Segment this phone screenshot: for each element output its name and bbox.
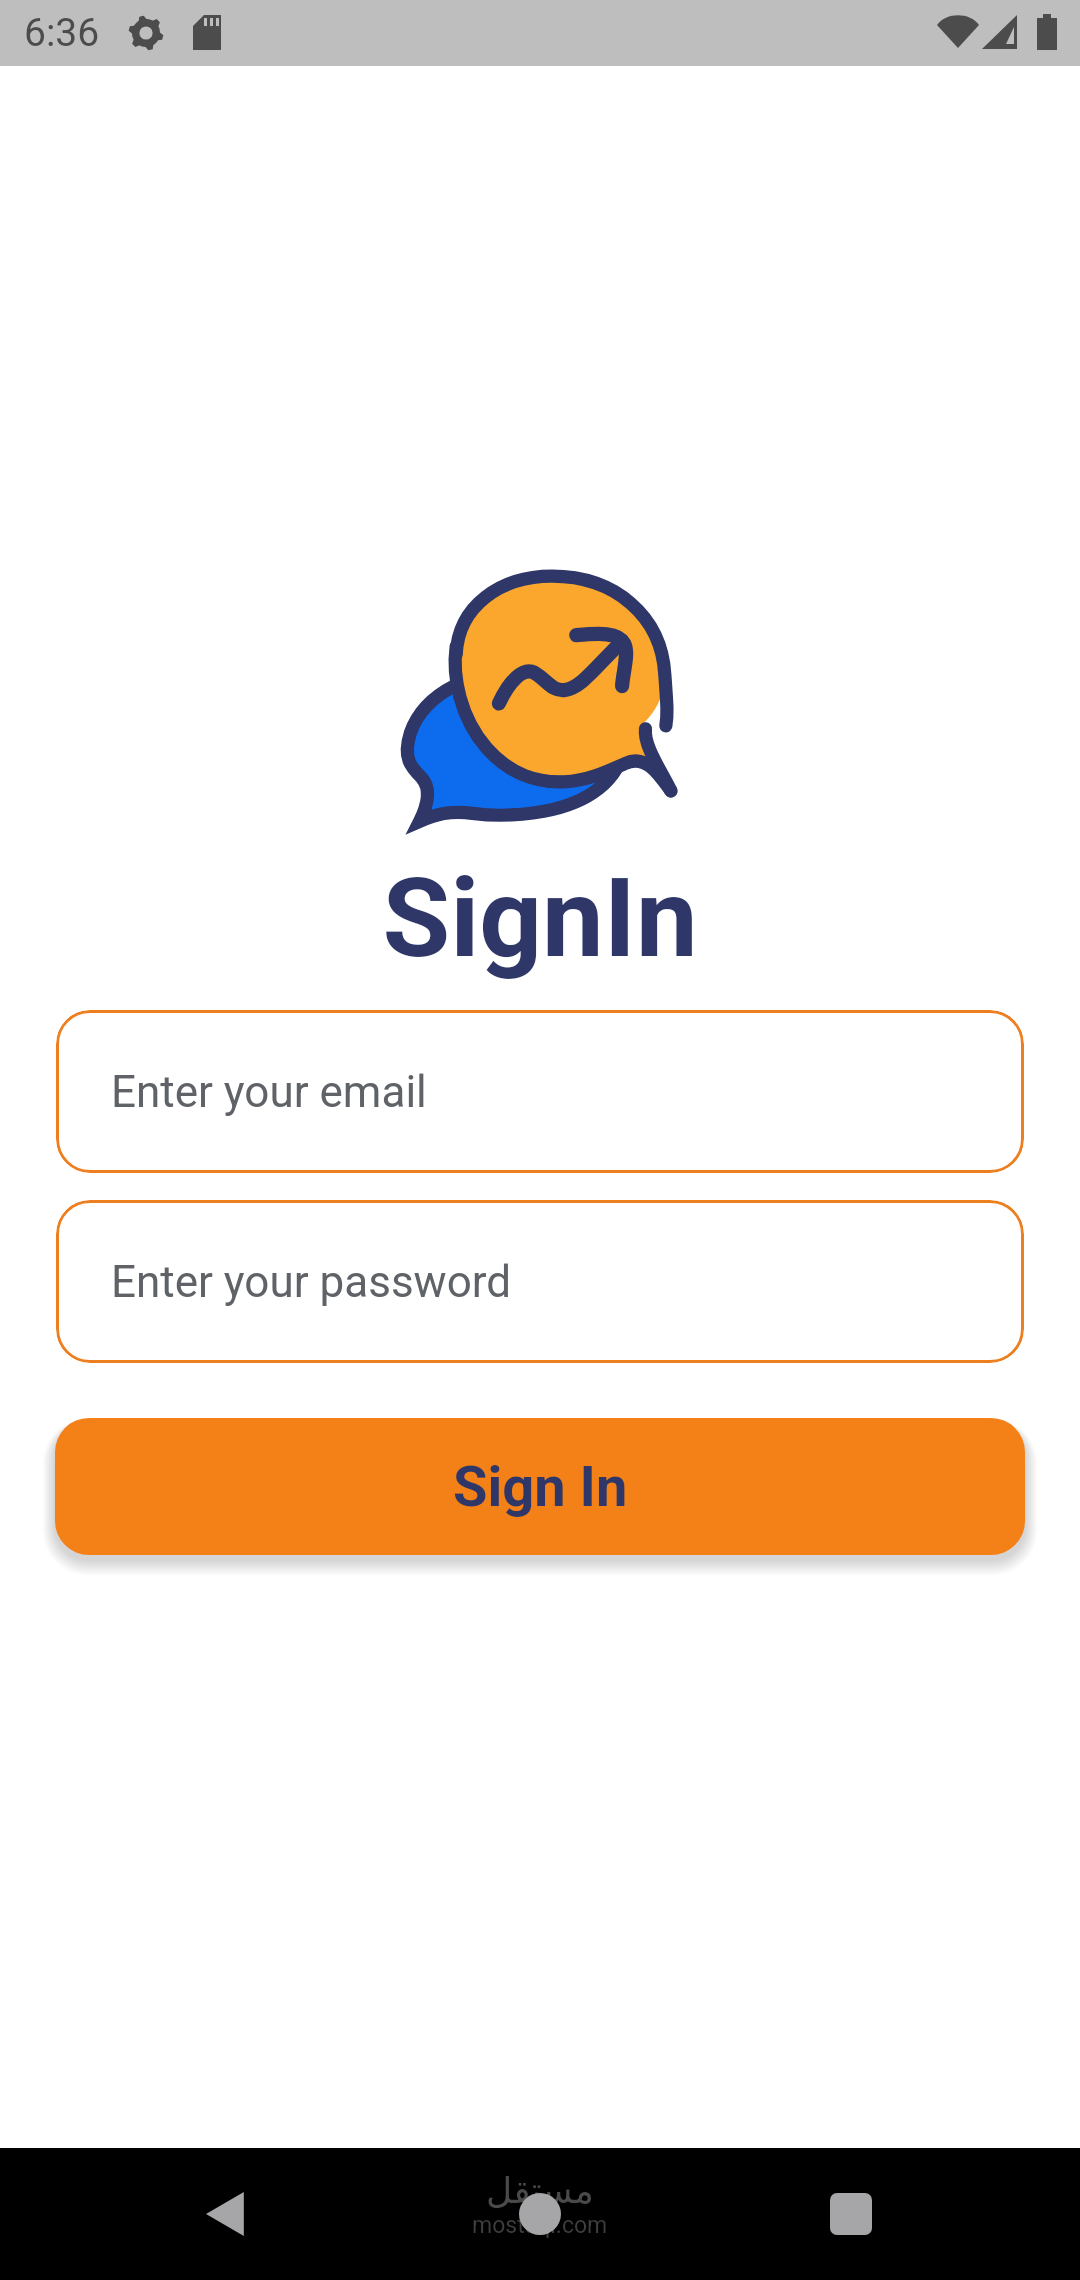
staticText: mostaql.com xyxy=(472,2212,608,2239)
button[interactable]: Recents xyxy=(799,2162,903,2266)
staticText: مستقل xyxy=(486,2170,594,2212)
staticText: Enter your password xyxy=(111,1256,512,1308)
staticText: SignIn xyxy=(0,854,1080,983)
staticText: Sign In xyxy=(453,1454,628,1520)
staticText: Enter your email xyxy=(111,1066,427,1118)
button[interactable]: Enter your password xyxy=(56,1200,1024,1363)
button[interactable]: Home xyxy=(488,2162,592,2266)
button[interactable]: Enter your email xyxy=(56,1010,1024,1173)
staticText: 6:36 xyxy=(24,10,100,56)
button[interactable]: Back xyxy=(176,2162,280,2266)
button[interactable]: Sign In xyxy=(55,1418,1025,1555)
